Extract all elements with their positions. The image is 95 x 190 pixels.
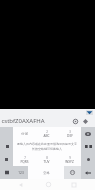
staticText: 123 [18, 171, 24, 175]
button[interactable]: Home [42, 179, 54, 190]
button[interactable]: Emoji [64, 166, 81, 179]
staticText: 要输入的内容或在此处显示候选词的提示文字 长按空格键可切换输入 [17, 142, 77, 151]
staticText: 3 [69, 130, 71, 134]
button[interactable]: 7 [13, 153, 35, 166]
button[interactable]: Backspace [81, 127, 95, 140]
button[interactable]: Symbol [81, 140, 95, 153]
button[interactable]: Enter [81, 166, 95, 179]
staticText: 空格 [43, 171, 50, 175]
button[interactable]: Symbols [0, 140, 13, 153]
staticText: 8 [46, 156, 48, 160]
button[interactable]: 要输入的内容或在此处显示候选词的提示文字 长按空格键可切换输入 [13, 140, 81, 153]
staticText: cstbfZ0AXAFHA [1, 117, 45, 125]
button[interactable]: 2 [35, 127, 58, 140]
button[interactable]: 123 [13, 166, 28, 179]
staticText: 7 [24, 156, 26, 160]
button[interactable]: 9 [58, 153, 81, 166]
button[interactable]: Settings [70, 116, 80, 126]
staticText: ABC [43, 134, 50, 138]
staticText: PQRS [20, 160, 29, 164]
button[interactable]: Inbox [86, 110, 93, 115]
staticText: DEF [67, 134, 73, 138]
button[interactable]: 3 [58, 127, 81, 140]
button[interactable]: 空格 [28, 166, 64, 179]
staticText: WXYZ [65, 160, 74, 164]
button[interactable]: 分词 [13, 127, 35, 140]
button[interactable]: Back [15, 179, 27, 190]
button[interactable]: 8 [35, 153, 58, 166]
button[interactable]: Period [81, 153, 95, 166]
staticText: TUV [43, 160, 50, 164]
button[interactable]: More options [80, 116, 90, 126]
button[interactable]: Punctuation [0, 153, 13, 166]
staticText: 9 [69, 156, 71, 160]
button[interactable]: Keyboard [0, 166, 13, 179]
button[interactable]: Recents [68, 179, 80, 190]
staticText: 分词 [21, 132, 28, 136]
staticText: 2 [46, 130, 48, 134]
